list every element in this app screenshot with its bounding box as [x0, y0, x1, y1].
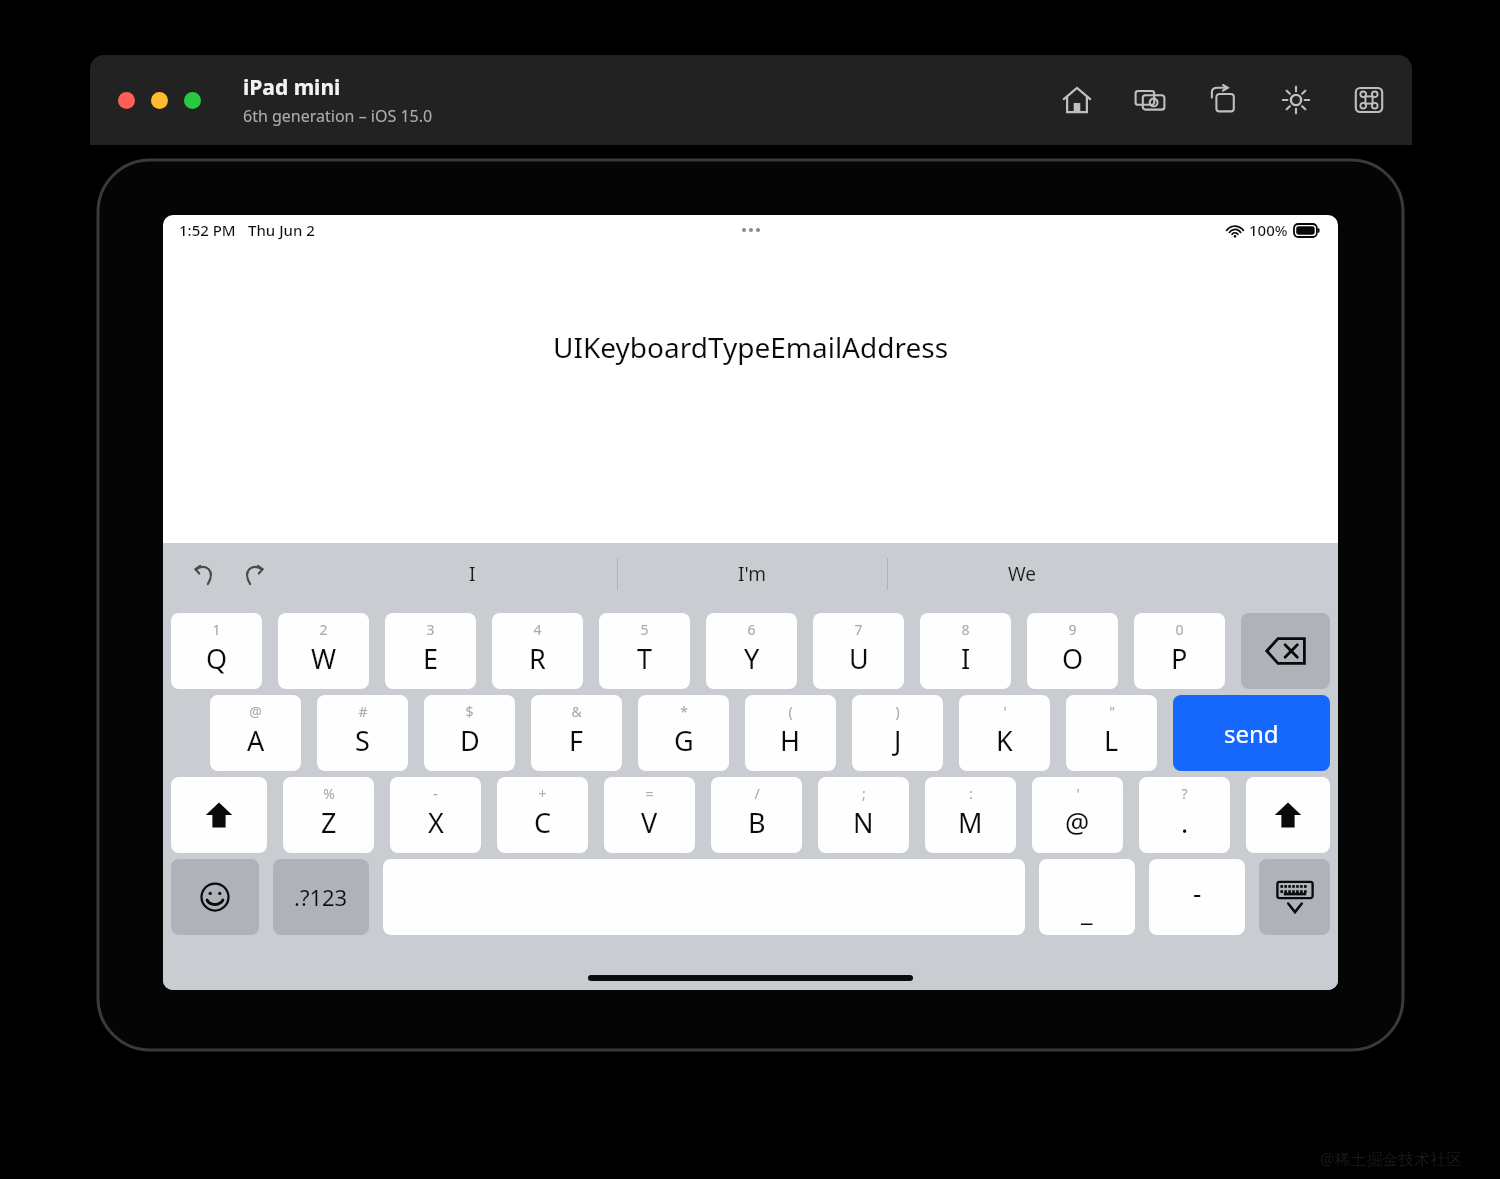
- button[interactable]: Backspace: [1241, 613, 1330, 689]
- button[interactable]: %: [283, 777, 374, 853]
- staticText: 2: [319, 620, 328, 639]
- staticText: @: [249, 702, 262, 721]
- button[interactable]: $: [424, 695, 515, 771]
- staticText: 7: [854, 620, 863, 639]
- staticText: $: [465, 702, 474, 721]
- staticText: @稀土掘金技术社区: [1320, 1148, 1463, 1170]
- button[interactable]: Screenshot: [1131, 81, 1169, 119]
- button[interactable]: Undo: [187, 556, 223, 592]
- button[interactable]: *: [638, 695, 729, 771]
- staticText: N: [853, 804, 874, 841]
- button[interactable]: 0: [1134, 613, 1225, 689]
- button[interactable]: Rotate: [1204, 81, 1242, 119]
- button[interactable]: :: [925, 777, 1016, 853]
- staticText: J: [894, 722, 902, 759]
- staticText: W: [311, 640, 337, 677]
- staticText: .: [1181, 804, 1189, 841]
- button[interactable]: ): [852, 695, 943, 771]
- staticText: Thu Jun 2: [248, 220, 315, 240]
- button[interactable]: 6: [706, 613, 797, 689]
- button[interactable]: 4: [492, 613, 583, 689]
- button[interactable]: send: [1173, 695, 1330, 771]
- button[interactable]: 7: [813, 613, 904, 689]
- button[interactable]: 5: [599, 613, 690, 689]
- staticText: V: [641, 804, 658, 841]
- button[interactable]: 2: [278, 613, 369, 689]
- button[interactable]: ': [1032, 777, 1123, 853]
- button[interactable]: -: [1149, 859, 1245, 935]
- staticText: 1:52 PM: [179, 220, 236, 240]
- button[interactable]: /: [711, 777, 802, 853]
- staticText: .?123: [294, 882, 348, 912]
- button[interactable]: _: [1039, 859, 1135, 935]
- staticText: T: [637, 640, 653, 677]
- staticText: ": [1109, 702, 1115, 721]
- button[interactable]: Redo: [235, 556, 271, 592]
- button[interactable]: Brightness: [1277, 81, 1315, 119]
- button[interactable]: Shortcuts: [1350, 81, 1388, 119]
- staticText: F: [569, 722, 584, 759]
- button[interactable]: I'm: [617, 543, 887, 605]
- staticText: Z: [321, 804, 337, 841]
- button[interactable]: Shift: [171, 777, 267, 853]
- button[interactable]: 8: [920, 613, 1011, 689]
- button[interactable]: -: [390, 777, 481, 853]
- button[interactable]: We: [887, 543, 1157, 605]
- staticText: ): [895, 702, 900, 721]
- button[interactable]: Hide keyboard: [1259, 859, 1330, 935]
- staticText: K: [996, 722, 1013, 759]
- staticText: P: [1171, 640, 1188, 677]
- button[interactable]: ": [1066, 695, 1157, 771]
- staticText: X: [428, 804, 444, 841]
- button[interactable]: ?: [1139, 777, 1230, 853]
- staticText: ?: [1181, 784, 1188, 803]
- staticText: ;: [862, 784, 866, 803]
- staticText: I'm: [738, 561, 766, 587]
- staticText: &: [571, 702, 582, 721]
- button[interactable]: @: [210, 695, 301, 771]
- staticText: E: [423, 640, 439, 677]
- button[interactable]: 3: [385, 613, 476, 689]
- staticText: 5: [640, 620, 649, 639]
- staticText: 4: [533, 620, 542, 639]
- staticText: I: [469, 561, 476, 587]
- staticText: 9: [1068, 620, 1077, 639]
- staticText: 100%: [1249, 220, 1288, 240]
- staticText: 3: [426, 620, 435, 639]
- staticText: U: [849, 640, 869, 677]
- staticText: #: [358, 702, 368, 721]
- staticText: O: [1062, 640, 1084, 677]
- staticText: 1: [212, 620, 221, 639]
- button[interactable]: Shift: [1246, 777, 1330, 853]
- staticText: ': [1076, 784, 1080, 803]
- staticText: ': [1003, 702, 1007, 721]
- staticText: :: [969, 784, 973, 803]
- button[interactable]: 9: [1027, 613, 1118, 689]
- button[interactable]: +: [497, 777, 588, 853]
- staticText: 0: [1175, 620, 1184, 639]
- button[interactable]: (: [745, 695, 836, 771]
- staticText: I: [961, 640, 971, 677]
- button[interactable]: .?123: [273, 859, 369, 935]
- staticText: Q: [206, 640, 228, 677]
- staticText: *: [680, 702, 688, 721]
- staticText: Y: [744, 640, 760, 677]
- staticText: B: [748, 804, 766, 841]
- button[interactable]: I: [327, 543, 617, 605]
- staticText: D: [460, 722, 480, 759]
- button[interactable]: Home: [1058, 81, 1096, 119]
- staticText: @: [1065, 804, 1090, 841]
- button[interactable]: ;: [818, 777, 909, 853]
- button[interactable]: &: [531, 695, 622, 771]
- staticText: (: [788, 702, 793, 721]
- staticText: UIKeyboardTypeEmailAddress: [553, 328, 949, 366]
- button[interactable]: Emoji: [171, 859, 259, 935]
- button[interactable]: =: [604, 777, 695, 853]
- button[interactable]: ': [959, 695, 1050, 771]
- staticText: 8: [961, 620, 970, 639]
- staticText: H: [780, 722, 801, 759]
- button[interactable]: 1: [171, 613, 262, 689]
- staticText: +: [538, 784, 547, 803]
- button[interactable]: #: [317, 695, 408, 771]
